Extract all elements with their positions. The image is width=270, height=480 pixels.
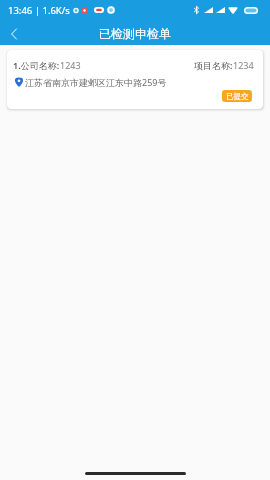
button[interactable]: 已提交 [222, 90, 252, 102]
staticText: 项目名称: [194, 59, 233, 71]
button[interactable]: Back [0, 20, 28, 45]
staticText: 1.公司名称: [13, 59, 60, 71]
button[interactable]: 1.公司名称: [7, 50, 263, 109]
staticText: 13:46 | 1.6K/s [8, 4, 70, 17]
staticText: 已提交 [226, 92, 249, 101]
staticText: 1234 [233, 59, 254, 71]
staticText: 已检测申检单 [99, 26, 171, 41]
staticText: 1243 [60, 59, 81, 71]
staticText: 江苏省南京市建邺区江东中路259号 [25, 76, 167, 88]
